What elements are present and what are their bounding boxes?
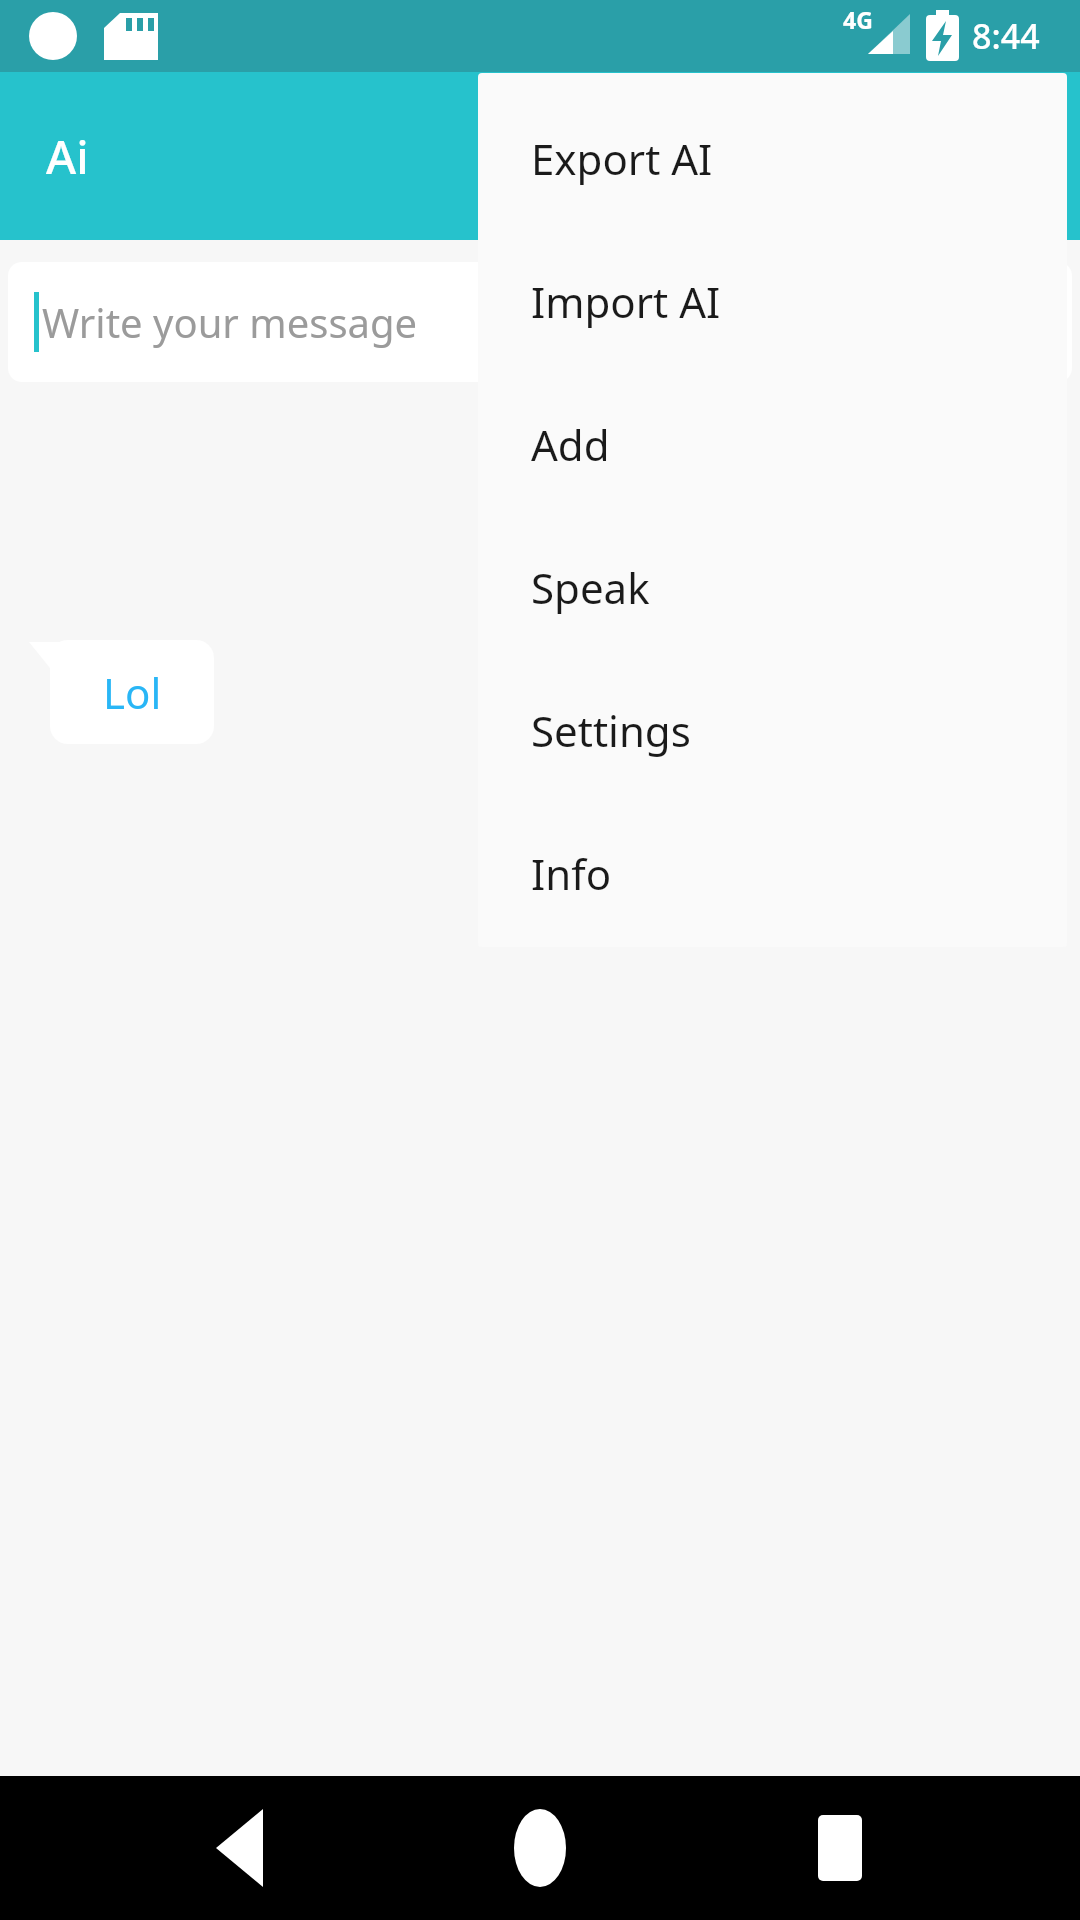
button[interactable]: Info [478,802,1067,945]
staticText: Add [531,416,610,473]
staticText: Import AI [531,273,721,330]
button[interactable]: Add [478,373,1067,516]
button[interactable]: Home [480,1788,600,1908]
button[interactable]: Write your message [8,262,1072,382]
staticText: Ai [46,125,89,188]
button[interactable]: Recents [780,1788,900,1908]
button[interactable]: Back [180,1788,300,1908]
button[interactable]: Speak [478,516,1067,659]
staticText: 8:44 [972,13,1040,59]
staticText: Settings [531,702,691,759]
staticText: Export AI [531,130,713,187]
button[interactable]: Settings [478,659,1067,802]
staticText: Write your message [42,295,418,349]
staticText: Speak [531,559,650,616]
button[interactable]: Import AI [478,230,1067,373]
button[interactable]: Lol [50,640,214,744]
staticText: Lol [103,664,162,721]
staticText: 4G [843,4,873,35]
staticText: Info [531,845,612,902]
button[interactable]: Export AI [478,87,1067,230]
